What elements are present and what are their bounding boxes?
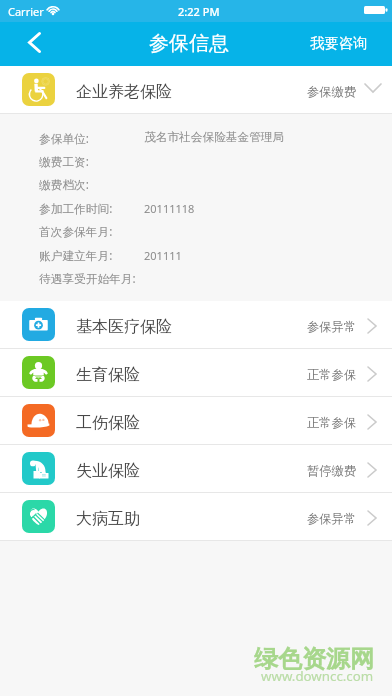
button[interactable]: 基本医疗保险 bbox=[0, 301, 392, 348]
staticText: 企业养老保险 bbox=[76, 82, 172, 102]
staticText: 缴费工资: bbox=[39, 153, 89, 169]
staticText: 2:22 PM bbox=[178, 4, 220, 19]
button[interactable]: 生育保险 bbox=[0, 349, 392, 396]
staticText: 账户建立年月: bbox=[39, 247, 113, 263]
staticText: 20111118 bbox=[144, 201, 195, 216]
staticText: 工伤保险 bbox=[76, 413, 140, 433]
button[interactable]: 企业养老保险 bbox=[0, 66, 392, 113]
staticText: 生育保险 bbox=[76, 365, 140, 385]
staticText: 茂名市社会保险基金管理局 bbox=[144, 130, 285, 145]
staticText: 参保缴费 bbox=[307, 84, 357, 99]
staticText: 正常参保 bbox=[307, 367, 357, 382]
staticText: 失业保险 bbox=[76, 461, 140, 481]
staticText: 缴费档次: bbox=[39, 176, 89, 192]
staticText: 绿色资源网 bbox=[254, 644, 374, 674]
staticText: 正常参保 bbox=[307, 415, 357, 430]
staticText: 参加工作时间: bbox=[39, 200, 113, 216]
staticText: 首次参保年月: bbox=[39, 223, 113, 239]
staticText: 参保信息 bbox=[149, 31, 229, 56]
staticText: 大病互助 bbox=[76, 509, 140, 529]
staticText: 待遇享受开始年月: bbox=[39, 270, 136, 286]
staticText: 基本医疗保险 bbox=[76, 317, 172, 337]
staticText: 暂停缴费 bbox=[307, 463, 357, 478]
staticText: Carrier bbox=[8, 4, 44, 19]
button[interactable]: 我要咨询 bbox=[292, 22, 392, 66]
staticText: 参保异常 bbox=[307, 319, 357, 334]
button[interactable]: 失业保险 bbox=[0, 445, 392, 492]
staticText: www.downcc.com bbox=[261, 667, 374, 685]
button[interactable]: Back bbox=[0, 22, 52, 66]
staticText: 我要咨询 bbox=[310, 34, 368, 52]
staticText: 参保单位: bbox=[39, 130, 89, 146]
staticText: 参保异常 bbox=[307, 511, 357, 526]
button[interactable]: 工伤保险 bbox=[0, 397, 392, 444]
staticText: 201111 bbox=[144, 248, 182, 263]
button[interactable]: 大病互助 bbox=[0, 493, 392, 540]
